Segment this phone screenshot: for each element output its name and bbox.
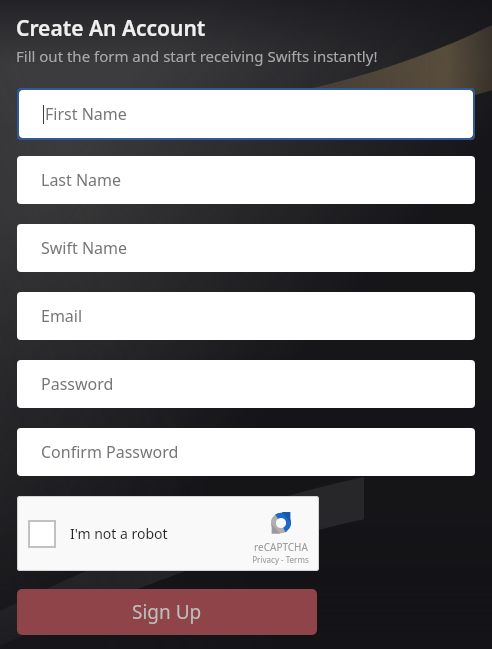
button[interactable]: Last Name xyxy=(17,156,475,204)
staticText: Create An Account xyxy=(16,14,206,43)
staticText: Privacy - Terms xyxy=(252,554,309,565)
staticText: Confirm Password xyxy=(41,441,179,463)
button[interactable]: Sign Up xyxy=(17,589,317,635)
staticText: Swift Name xyxy=(41,237,128,259)
button[interactable]: Password xyxy=(17,360,475,408)
button[interactable]: First Name xyxy=(19,90,473,138)
button[interactable]: Swift Name xyxy=(17,224,475,272)
staticText: reCAPTCHA xyxy=(254,540,308,554)
button[interactable]: Email xyxy=(17,292,475,340)
staticText: First Name xyxy=(45,103,127,125)
staticText: Password xyxy=(41,373,114,395)
staticText: Sign Up xyxy=(132,599,202,625)
staticText: Fill out the form and start receiving Sw… xyxy=(16,46,378,66)
staticText: Email xyxy=(41,305,83,327)
button[interactable]: I'm not a robot checkbox xyxy=(28,520,56,548)
staticText: I'm not a robot xyxy=(70,524,168,543)
staticText: Last Name xyxy=(41,169,122,191)
button[interactable]: Confirm Password xyxy=(17,428,475,476)
